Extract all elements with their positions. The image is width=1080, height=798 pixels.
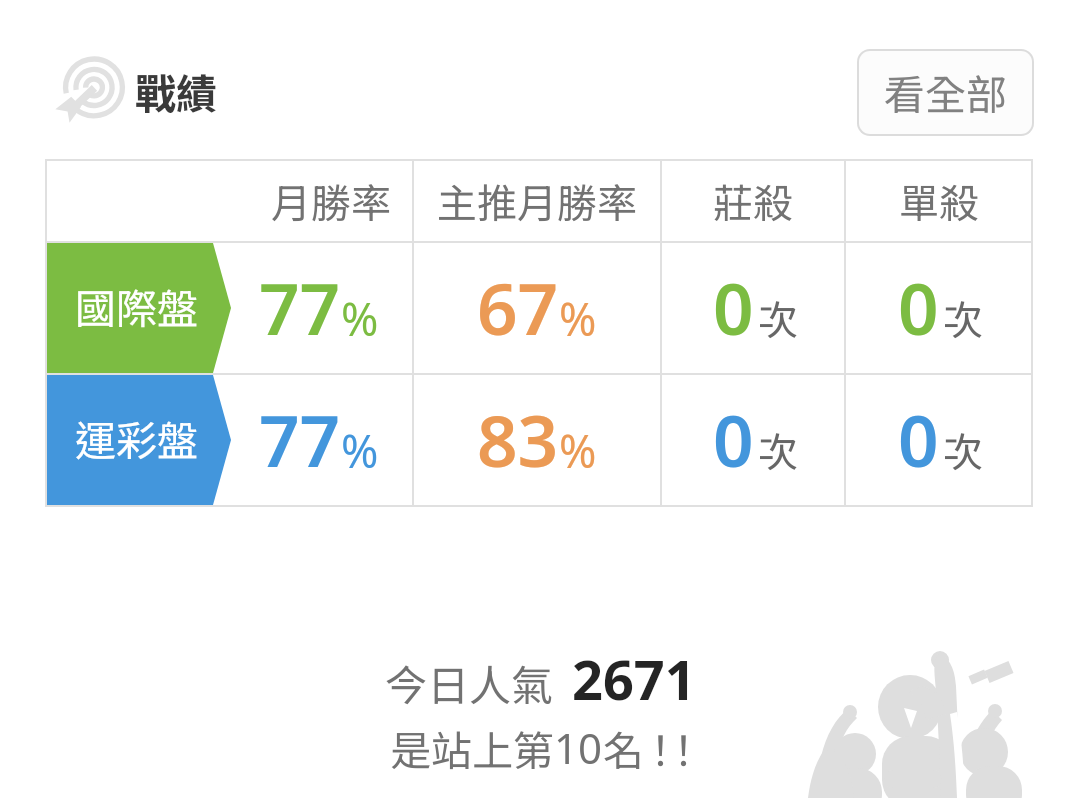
- staticText: 67: [477, 259, 559, 356]
- staticText: 是站上第: [390, 718, 554, 777]
- button[interactable]: [46, 374, 1032, 506]
- staticText: 0: [898, 391, 939, 488]
- staticText: 名: [603, 718, 644, 777]
- staticText: %: [559, 420, 597, 481]
- staticText: 2671: [572, 642, 696, 716]
- staticText: 戰績: [135, 61, 217, 120]
- staticText: 莊殺: [713, 172, 793, 230]
- staticText: ！！: [640, 718, 686, 777]
- staticText: 月勝率: [271, 172, 391, 230]
- button[interactable]: [46, 242, 1032, 374]
- staticText: 83: [477, 391, 559, 488]
- staticText: 今日人氣: [385, 652, 554, 713]
- staticText: 次: [758, 289, 798, 347]
- button[interactable]: 看全部: [859, 51, 1032, 134]
- staticText: 0: [713, 259, 754, 356]
- staticText: 次: [758, 421, 798, 479]
- staticText: 77: [259, 259, 341, 356]
- staticText: 次: [943, 289, 983, 347]
- staticText: 國際盤: [75, 276, 198, 335]
- staticText: 0: [713, 391, 754, 488]
- staticText: %: [341, 420, 379, 481]
- staticText: 10: [554, 719, 603, 776]
- staticText: 單殺: [899, 172, 979, 230]
- staticText: 主推月勝率: [437, 172, 637, 230]
- staticText: 0: [898, 259, 939, 356]
- staticText: 77: [259, 391, 341, 488]
- staticText: 次: [943, 421, 983, 479]
- staticText: 運彩盤: [75, 408, 198, 467]
- other: Record: [48, 50, 134, 136]
- staticText: %: [341, 288, 379, 349]
- staticText: 看全部: [884, 62, 1007, 121]
- staticText: %: [559, 288, 597, 349]
